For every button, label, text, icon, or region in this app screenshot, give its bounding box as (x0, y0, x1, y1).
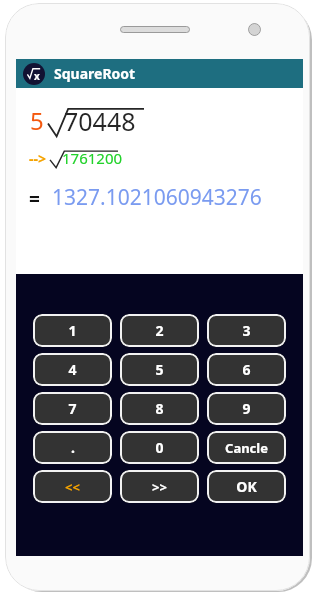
staticText: >> (152, 478, 167, 496)
button[interactable]: OK (207, 470, 286, 503)
staticText: 2 (155, 321, 164, 340)
staticText: 7 (68, 399, 77, 418)
staticText: 0 (155, 438, 164, 457)
button[interactable]: x (16, 59, 303, 88)
button[interactable]: Cancle (207, 431, 286, 464)
staticText: 4 (68, 360, 77, 379)
staticText: 5 (30, 104, 44, 137)
button[interactable]: 2 (120, 314, 199, 347)
button[interactable]: . (33, 431, 112, 464)
staticText: << (65, 478, 80, 496)
button[interactable]: 7 (33, 392, 112, 425)
button[interactable]: 0 (120, 431, 199, 464)
staticText: Cancle (225, 439, 268, 457)
button[interactable]: 3 (207, 314, 286, 347)
staticText: 8 (155, 399, 164, 418)
button[interactable]: 9 (207, 392, 286, 425)
button[interactable]: 5 (16, 88, 303, 274)
button[interactable]: 5 (120, 353, 199, 386)
staticText: . (71, 438, 75, 457)
staticText: x (34, 69, 40, 83)
staticText: 70448 (64, 104, 136, 138)
button[interactable]: << (33, 470, 112, 503)
staticText: 1761200 (62, 148, 123, 168)
staticText: 6 (242, 360, 251, 379)
staticText: = (29, 186, 40, 212)
staticText: 9 (242, 399, 251, 418)
button[interactable]: 1 (33, 314, 112, 347)
staticText: 5 (155, 360, 164, 379)
button[interactable]: 8 (120, 392, 199, 425)
staticText: --> (29, 149, 46, 168)
button[interactable]: >> (120, 470, 199, 503)
staticText: 1 (68, 321, 77, 340)
button[interactable]: 6 (207, 353, 286, 386)
button[interactable]: 4 (33, 353, 112, 386)
staticText: OK (236, 477, 257, 496)
staticText: 3 (242, 321, 251, 340)
staticText: 1327.1021060943276 (52, 183, 262, 212)
staticText: SquareRoot (54, 64, 136, 83)
